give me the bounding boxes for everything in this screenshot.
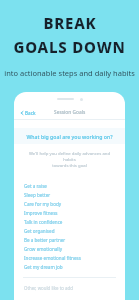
staticText: GOALS DOWN [13, 37, 126, 57]
button[interactable]: Be a better partner [14, 235, 125, 244]
button[interactable]: Get organised [14, 226, 125, 235]
staticText: Get a raise [24, 183, 47, 189]
button[interactable]: Care for my body [14, 199, 125, 208]
staticText: Sleep better [24, 192, 51, 198]
staticText: Talk in confidence [24, 219, 63, 225]
button[interactable]: Sleep better [14, 190, 125, 199]
staticText: into actionable steps and daily habits [4, 68, 135, 78]
staticText: Get organised [24, 228, 55, 234]
staticText: Back [25, 110, 36, 116]
staticText: BREAK [43, 13, 97, 33]
button[interactable]: Get a raise [14, 181, 125, 190]
staticText: Get my dream job [24, 264, 63, 270]
staticText: Increase emotional fitness [24, 255, 81, 261]
button[interactable]: Increase emotional fitness [14, 253, 125, 262]
staticText: What big goal are you working on? [26, 133, 113, 140]
staticText: Session Goals [54, 109, 86, 116]
button[interactable]: Other, would like to add [14, 284, 125, 292]
button[interactable]: Talk in confidence [14, 217, 125, 226]
button[interactable]: Back [18, 108, 38, 118]
staticText: Other, would like to add [24, 285, 73, 291]
button[interactable]: Grow emotionally [14, 244, 125, 253]
staticText: We'll help you define daily advances and… [26, 150, 113, 168]
staticText: Be a better partner [24, 237, 66, 243]
button[interactable]: Improve fitness [14, 208, 125, 217]
staticText: Improve fitness [24, 210, 58, 216]
staticText: Care for my body [24, 201, 62, 207]
button[interactable]: Get my dream job [14, 262, 125, 271]
staticText: Grow emotionally [24, 246, 63, 252]
